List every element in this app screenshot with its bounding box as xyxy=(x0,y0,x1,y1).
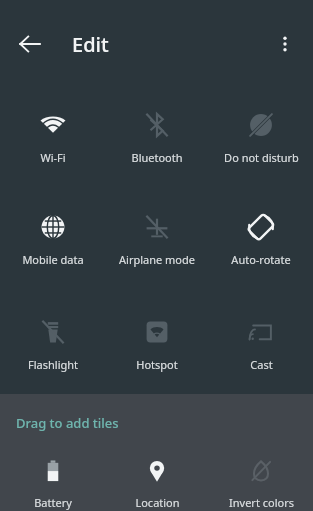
button[interactable]: Location xyxy=(105,451,209,510)
button[interactable]: Cast xyxy=(209,293,313,398)
button[interactable]: Invert colors xyxy=(209,451,313,510)
staticText: Cast xyxy=(250,357,273,372)
staticText: Auto-rotate xyxy=(231,252,291,267)
staticText: Mobile data xyxy=(22,252,84,267)
staticText: Battery xyxy=(34,495,72,510)
button[interactable]: Back xyxy=(8,22,52,66)
button[interactable]: Mobile data xyxy=(0,188,105,293)
button[interactable]: More options xyxy=(263,22,307,66)
button[interactable]: Bluetooth xyxy=(105,88,209,188)
staticText: Hotspot xyxy=(136,357,178,372)
staticText: Airplane mode xyxy=(119,252,195,267)
staticText: Flashlight xyxy=(28,357,78,372)
staticText: Drag to add tiles xyxy=(16,414,119,432)
button[interactable]: Flashlight xyxy=(0,293,105,398)
button[interactable]: Do not disturb xyxy=(209,88,313,188)
button[interactable]: Battery xyxy=(0,451,105,510)
staticText: Location xyxy=(135,495,180,510)
staticText: Wi-Fi xyxy=(40,150,66,165)
staticText: Edit xyxy=(72,31,109,58)
button[interactable]: Wi-Fi xyxy=(0,88,105,188)
button[interactable]: Airplane mode xyxy=(105,188,209,293)
staticText: Do not disturb xyxy=(224,150,299,165)
staticText: Bluetooth xyxy=(131,150,183,165)
button[interactable]: Hotspot xyxy=(105,293,209,398)
button[interactable]: Auto-rotate xyxy=(209,188,313,293)
staticText: Invert colors xyxy=(229,495,294,510)
